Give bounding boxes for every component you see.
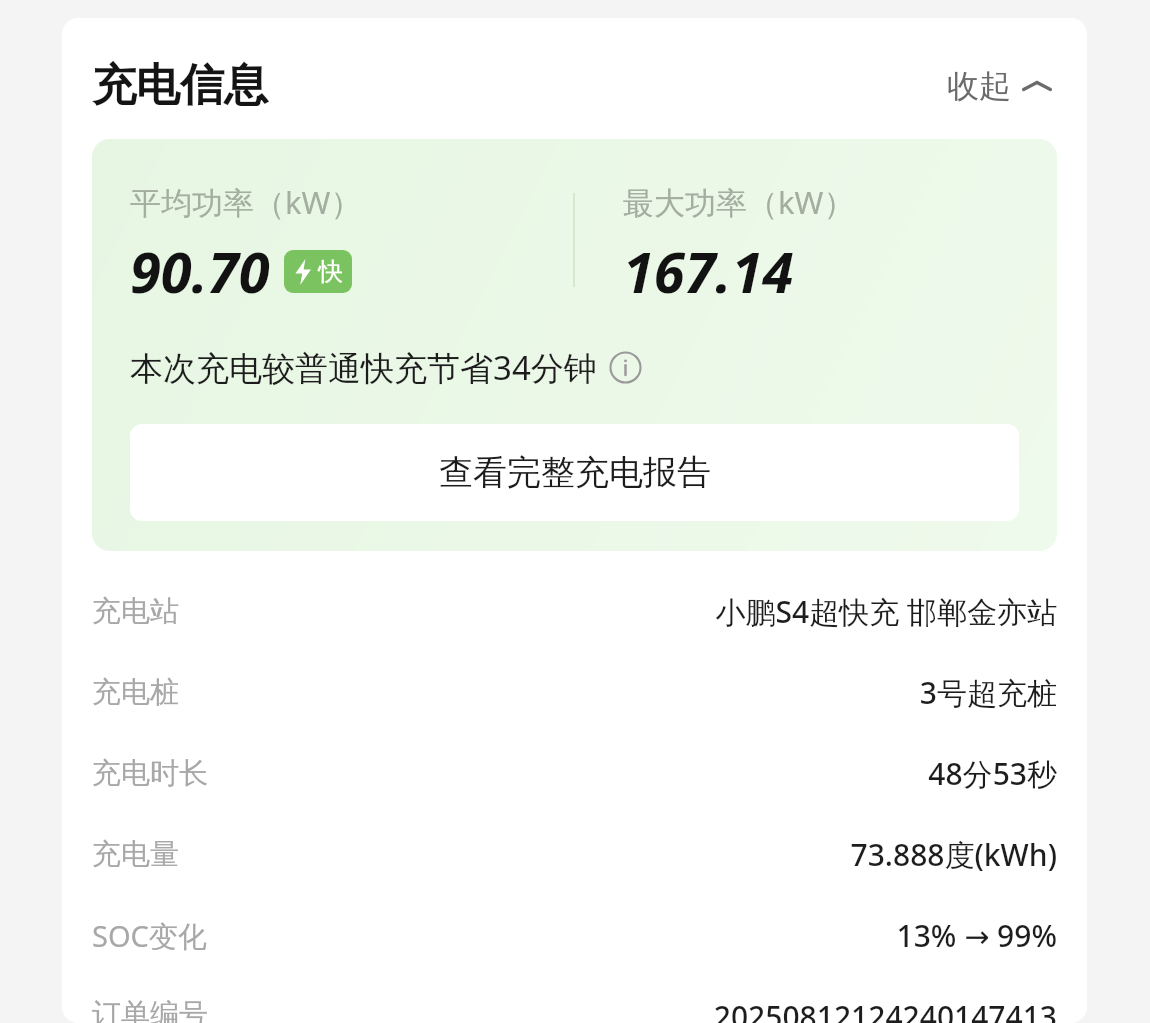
staticText: 最大功率（kW） bbox=[623, 181, 855, 223]
staticText: 充电站 bbox=[92, 593, 179, 630]
button[interactable]: 充电时长 bbox=[92, 713, 1057, 794]
button[interactable]: 充电桩 bbox=[92, 632, 1057, 713]
staticText: SOC变化 bbox=[92, 916, 207, 956]
staticText: 充电桩 bbox=[92, 674, 179, 711]
staticText: 3号超充桩 bbox=[919, 672, 1057, 713]
staticText: 快 bbox=[318, 256, 343, 287]
staticText: 充电时长 bbox=[92, 755, 208, 792]
staticText: 90.70 bbox=[130, 233, 270, 309]
button[interactable]: 充电量 bbox=[92, 794, 1057, 875]
staticText: 充电信息 bbox=[92, 58, 268, 113]
button[interactable]: 本次充电较普通快充节省34分钟 bbox=[130, 345, 642, 390]
button[interactable]: 收起 bbox=[943, 60, 1057, 112]
staticText: 73.888度(kWh) bbox=[850, 834, 1057, 875]
staticText: 本次充电较普通快充节省34分钟 bbox=[130, 345, 597, 390]
staticText: 20250812124240147413 bbox=[713, 996, 1057, 1023]
staticText: 167.14 bbox=[623, 233, 794, 309]
staticText: 充电量 bbox=[92, 836, 179, 873]
button[interactable]: 充电站 bbox=[92, 551, 1057, 632]
staticText: 订单编号 bbox=[92, 996, 208, 1023]
staticText: 小鹏S4超快充 邯郸金亦站 bbox=[715, 591, 1057, 632]
button[interactable]: SOC变化 bbox=[92, 875, 1057, 956]
staticText: 48分53秒 bbox=[928, 753, 1057, 794]
staticText: 13% → 99% bbox=[896, 915, 1057, 956]
button[interactable]: 订单编号 bbox=[92, 956, 1057, 1023]
staticText: 平均功率（kW） bbox=[130, 181, 362, 223]
staticText: 收起 bbox=[947, 66, 1011, 106]
button[interactable]: 查看完整充电报告 bbox=[130, 424, 1019, 521]
staticText: 查看完整充电报告 bbox=[439, 451, 711, 494]
